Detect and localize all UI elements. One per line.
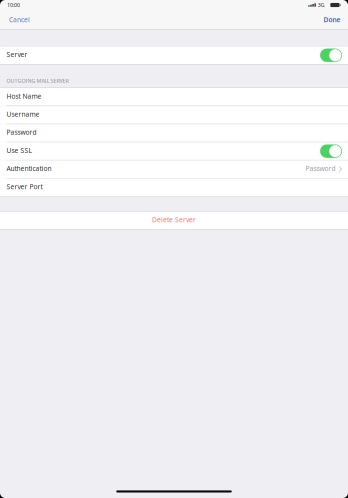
staticText: Authentication — [6, 164, 51, 173]
staticText: Use SSL — [6, 146, 31, 155]
staticText: 10:00 — [7, 1, 20, 9]
staticText: Password — [6, 128, 36, 137]
staticText: Delete Server — [152, 215, 196, 224]
staticText: Host Name — [6, 92, 41, 100]
button[interactable]: Password — [0, 124, 348, 142]
button[interactable]: Authentication — [0, 160, 348, 178]
button[interactable]: Server — [0, 46, 348, 64]
button[interactable]: Username — [0, 106, 348, 124]
staticText: Password — [305, 164, 335, 173]
staticText: Server — [6, 50, 27, 59]
button[interactable]: Server Port — [0, 179, 348, 196]
button[interactable]: Done — [317, 10, 348, 29]
staticText: OUTGOING MAIL SERVER — [6, 77, 68, 84]
staticText: Done — [324, 15, 341, 24]
staticText: Server Port — [6, 182, 42, 191]
button[interactable]: Host Name — [0, 88, 348, 106]
staticText: Username — [6, 110, 39, 119]
button[interactable]: Use SSL — [0, 142, 348, 160]
staticText: Cancel — [9, 15, 30, 24]
staticText: 3G — [318, 1, 325, 9]
button[interactable]: Delete Server — [0, 212, 348, 229]
button[interactable]: Cancel — [0, 10, 37, 29]
